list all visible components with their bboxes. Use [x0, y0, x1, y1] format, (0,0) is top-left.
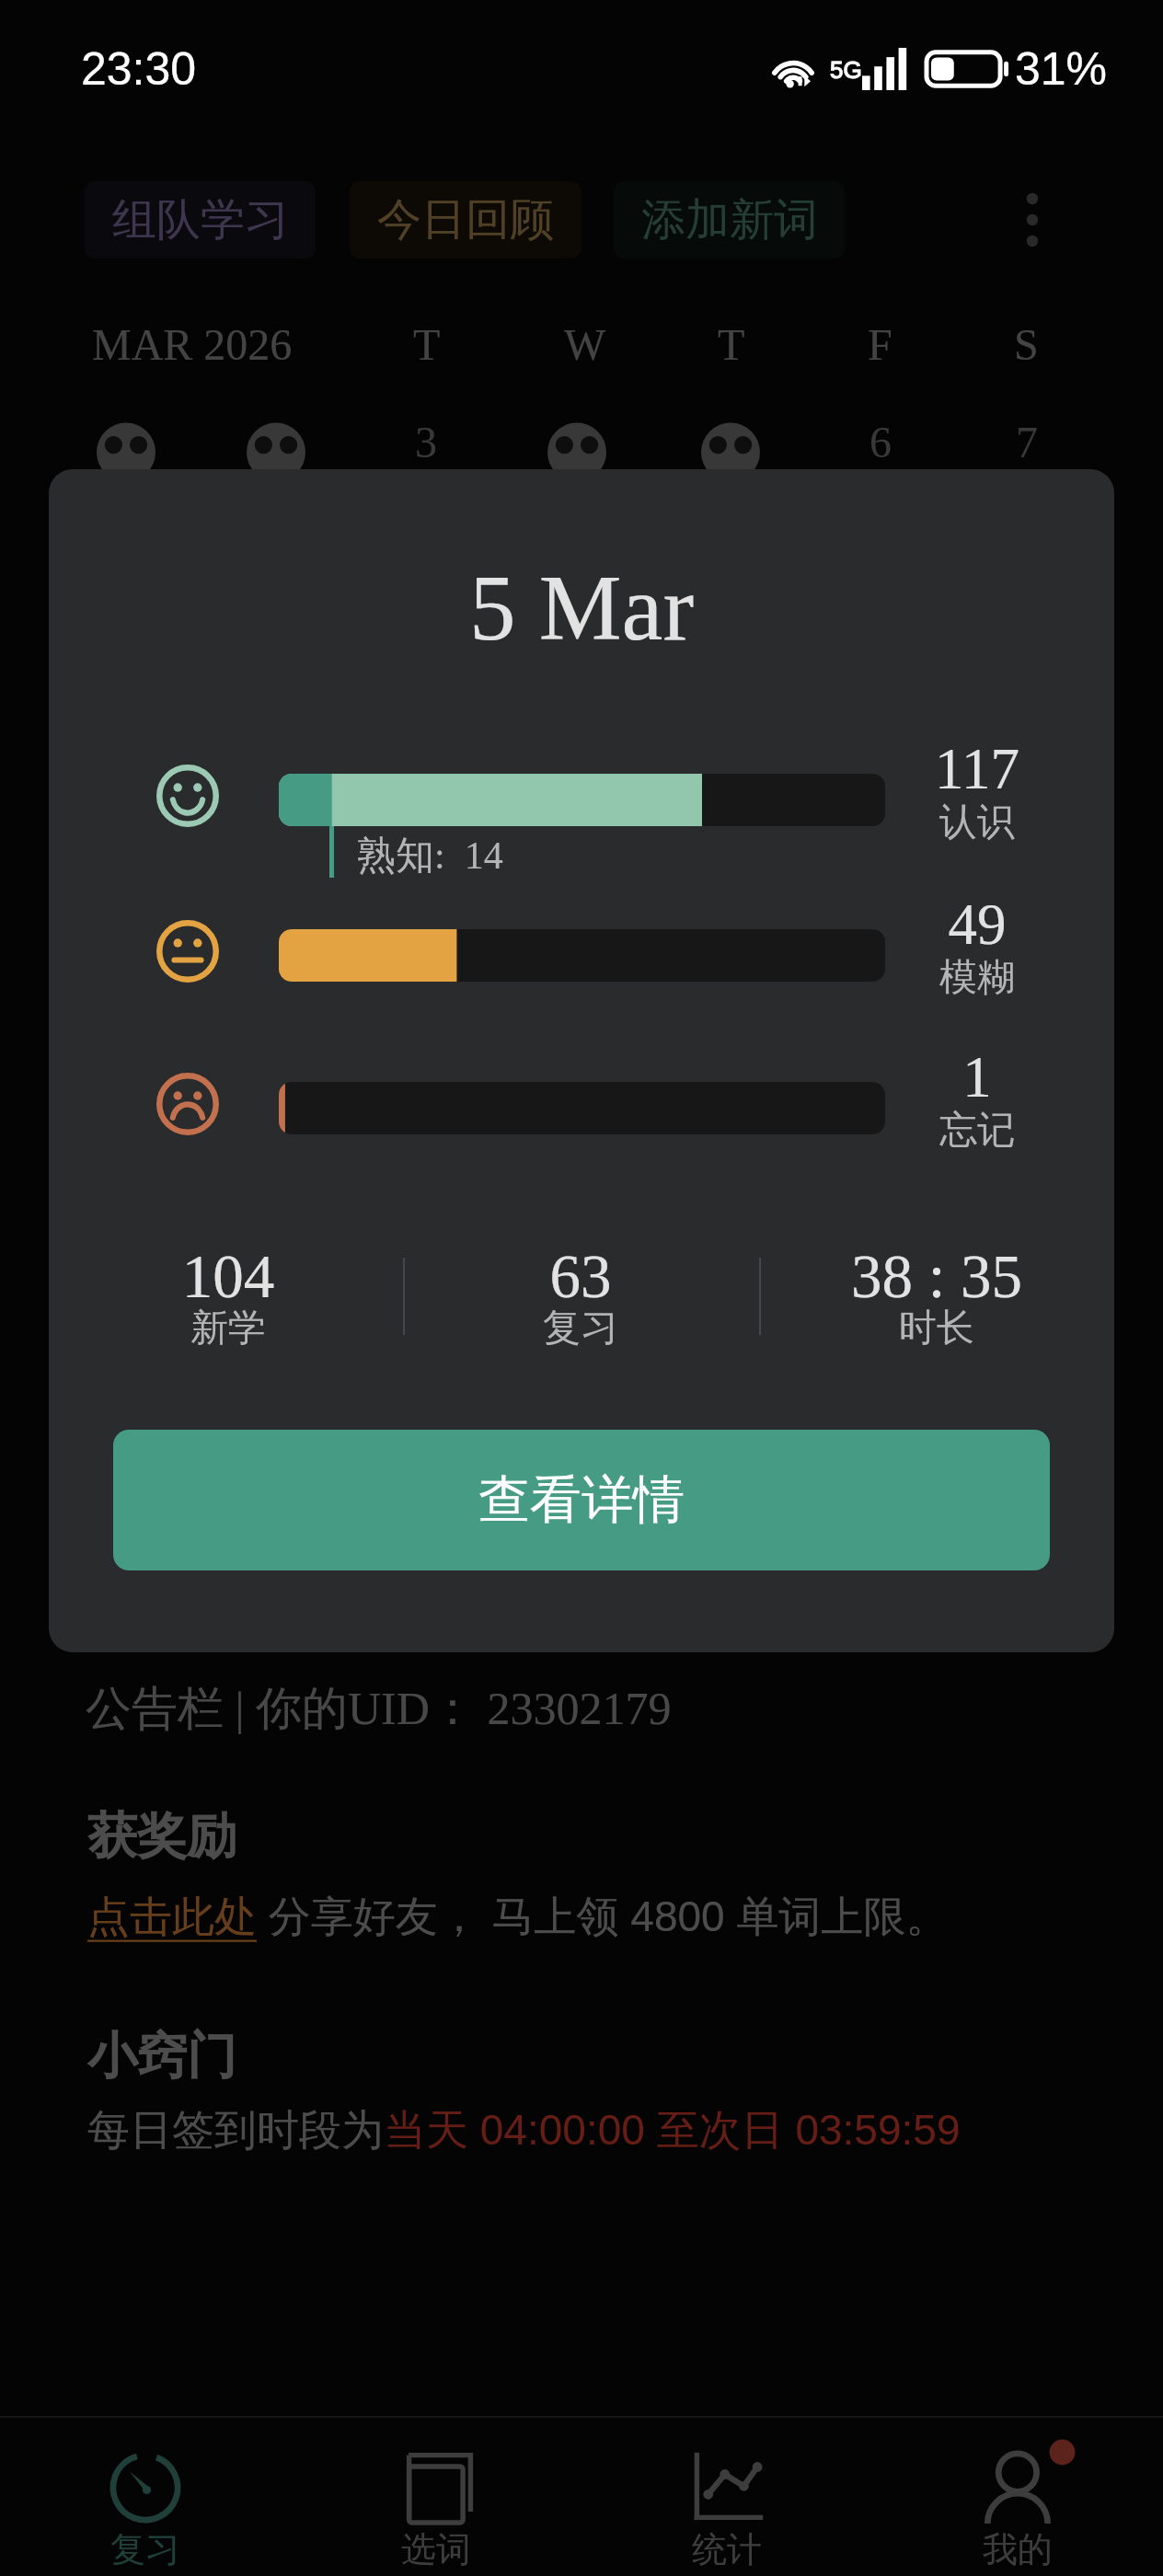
staticText: 公告栏 | 你的UID： 23302179 [86, 1680, 672, 1738]
staticText: 49 [876, 892, 1078, 957]
button[interactable]: More options [1005, 192, 1060, 247]
staticText: S [1014, 320, 1039, 369]
staticText: 5 Mar [49, 557, 1114, 660]
button[interactable]: 查看详情 [113, 1430, 1050, 1570]
staticText: 熟知: 14 [357, 832, 503, 880]
staticText: 23:30 [81, 43, 197, 95]
staticText: 31% [1015, 43, 1108, 95]
button[interactable]: 组队学习 [85, 181, 316, 259]
button[interactable]: 统计 [581, 2416, 872, 2576]
button[interactable]: 复习 [0, 2416, 291, 2576]
staticText: T [413, 320, 441, 369]
button[interactable]: 选词 [291, 2416, 581, 2576]
staticText: 统计 [692, 2527, 762, 2571]
staticText: 104 [99, 1242, 357, 1310]
staticText: 当天 04:00:00 至次日 03:59:59 [384, 2104, 961, 2157]
staticText: T [718, 320, 745, 369]
staticText: 1 [876, 1045, 1078, 1110]
staticText: 我的 [983, 2527, 1053, 2571]
staticText: 新学 [99, 1305, 357, 1352]
staticText: 查看详情 [478, 1467, 685, 1533]
button[interactable]: 今日回顾 [350, 181, 581, 259]
staticText: 忘记 [876, 1107, 1078, 1155]
staticText: 分享好友， 马上领 4800 单词上限。 [257, 1891, 949, 1944]
staticText: 时长 [808, 1305, 1065, 1352]
staticText: MAR 2026 [92, 320, 293, 369]
staticText: 每日签到时段为 [87, 2104, 384, 2157]
staticText: 3 [415, 418, 437, 466]
staticText: 复习 [110, 2527, 180, 2571]
staticText: 117 [876, 737, 1078, 801]
staticText: 点击此处 [87, 1891, 257, 1944]
staticText: 组队学习 [112, 192, 289, 247]
staticText: 添加新词 [641, 192, 818, 247]
staticText: 选词 [401, 2527, 471, 2571]
staticText: 获奖励 [87, 1805, 236, 1868]
button[interactable]: 我的 [872, 2416, 1163, 2576]
button[interactable]: 添加新词 [614, 181, 845, 259]
staticText: W [564, 320, 606, 369]
staticText: 模糊 [876, 954, 1078, 1002]
staticText: 6 [869, 418, 892, 466]
staticText: 38 : 35 [808, 1242, 1065, 1310]
staticText: 5G [830, 56, 862, 83]
staticText: 复习 [452, 1305, 709, 1352]
staticText: 63 [452, 1242, 709, 1310]
staticText: 今日回顾 [377, 192, 554, 247]
staticText: 小窍门 [87, 2025, 236, 2087]
staticText: F [868, 320, 892, 369]
staticText: 7 [1016, 418, 1038, 466]
staticText: 认识 [876, 799, 1078, 846]
